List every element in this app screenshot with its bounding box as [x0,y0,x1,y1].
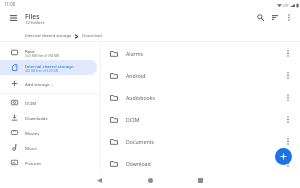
staticText: Audiobooks [126,94,155,101]
staticText: 12 folders [25,20,45,26]
button[interactable]: Movies [0,126,97,139]
button[interactable]: Back [92,173,107,188]
button[interactable]: Open navigation menu [5,9,22,26]
button[interactable]: More options [280,9,297,26]
staticText: Music [25,145,37,151]
staticText: Alarms [126,50,144,57]
button[interactable]: Pictures [0,156,97,169]
staticText: Android [126,72,146,79]
staticText: Root [25,48,35,54]
staticText: Internal shared storage [25,63,74,69]
staticText: Pictures [25,160,42,166]
button[interactable]: Audiobooks [101,86,300,108]
button[interactable]: More options for Documents [281,134,295,148]
button[interactable]: Android [101,64,300,86]
button[interactable]: More options for Alarms [281,46,295,60]
button[interactable]: More options for Audiobooks [281,90,295,104]
button[interactable]: Documents [101,130,300,152]
button[interactable]: Search [252,9,269,26]
button[interactable]: Downloads [0,111,97,124]
button[interactable]: Recent apps [193,173,208,188]
staticText: Add storage… [25,81,53,87]
staticText: Download [82,33,102,39]
staticText: Files [25,12,40,21]
staticText: 3.03 MB free of 764 MB [25,54,59,58]
button[interactable]: Download [101,152,300,174]
button[interactable]: Download [82,32,102,40]
staticText: 11:00 [4,1,16,7]
button[interactable]: Sort [266,9,283,26]
button[interactable]: Internal shared storage [25,32,72,40]
button[interactable]: Music [0,141,97,154]
button[interactable]: Root [0,45,97,60]
button[interactable]: More options for Download [281,156,295,170]
staticText: Movies [25,130,40,136]
staticText: DCIM [126,116,140,123]
button[interactable]: Add storage… [0,77,97,90]
staticText: Downloads [25,115,48,121]
button[interactable]: Create new [275,148,292,165]
button[interactable]: DCIM [101,108,300,130]
staticText: DCIM [25,100,37,106]
staticText: Download [126,160,151,167]
button[interactable]: Alarms [101,42,300,64]
staticText: LTE [283,3,289,8]
button[interactable]: Internal shared storage [0,60,97,75]
staticText: Documents [126,138,154,145]
staticText: Internal shared storage [25,33,72,39]
button[interactable]: More options for Android [281,68,295,82]
button[interactable]: More options for DCIM [281,112,295,126]
staticText: 442 GB free of 3.29 GB [25,69,58,73]
button[interactable]: Home [143,173,158,188]
button[interactable]: DCIM [0,96,97,109]
